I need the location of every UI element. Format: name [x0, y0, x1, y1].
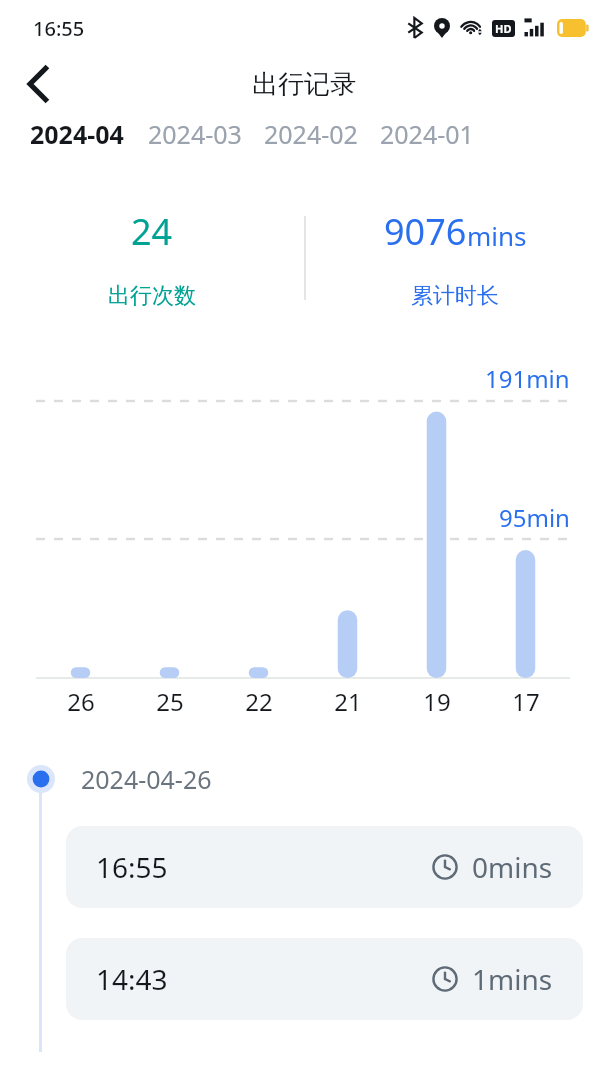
- staticText: 0mins: [472, 848, 553, 886]
- staticText: 95min: [499, 501, 570, 534]
- button[interactable]: 16:55: [66, 826, 583, 908]
- button[interactable]: 2024-03: [148, 117, 242, 151]
- button[interactable]: 14:43: [66, 938, 583, 1020]
- staticText: 2024-02: [264, 117, 358, 151]
- staticText: 1mins: [472, 960, 553, 998]
- button[interactable]: Back: [14, 60, 62, 108]
- button[interactable]: 2024-01: [380, 117, 474, 151]
- staticText: 24: [131, 207, 173, 256]
- staticText: 累计时长: [411, 282, 499, 310]
- staticText: 25: [156, 685, 184, 718]
- button[interactable]: 2024-02: [264, 117, 358, 151]
- staticText: 2024-03: [148, 117, 242, 151]
- staticText: 191min: [485, 362, 570, 395]
- staticText: 出行记录: [252, 68, 356, 101]
- staticText: 14:43: [96, 960, 168, 998]
- staticText: 出行次数: [108, 282, 196, 310]
- staticText: 16:55: [96, 848, 168, 886]
- button[interactable]: 24: [0, 207, 304, 310]
- button[interactable]: 2024-04: [30, 117, 124, 151]
- staticText: 17: [512, 685, 540, 718]
- staticText: mins: [467, 218, 527, 253]
- staticText: 9076: [384, 207, 467, 256]
- staticText: 2024-04-26: [81, 762, 212, 796]
- staticText: 2024-04: [30, 117, 124, 151]
- staticText: 19: [423, 685, 451, 718]
- staticText: 2024-01: [380, 117, 474, 151]
- staticText: 26: [67, 685, 95, 718]
- staticText: 16:55: [33, 15, 85, 42]
- staticText: HD: [495, 21, 512, 36]
- button[interactable]: 9076: [303, 207, 607, 310]
- staticText: 22: [245, 685, 273, 718]
- staticText: 21: [334, 685, 362, 718]
